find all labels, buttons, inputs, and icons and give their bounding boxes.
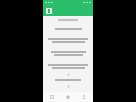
button[interactable]: Home bbox=[61, 92, 75, 102]
button[interactable] bbox=[55, 78, 81, 82]
button[interactable] bbox=[48, 63, 88, 70]
button[interactable]: Chats bbox=[45, 92, 59, 102]
button[interactable] bbox=[48, 37, 88, 44]
button[interactable] bbox=[55, 27, 82, 31]
button[interactable]: Menu bbox=[46, 8, 52, 14]
button[interactable] bbox=[58, 18, 78, 22]
button[interactable] bbox=[51, 50, 86, 57]
button[interactable]: Profile bbox=[77, 92, 91, 102]
